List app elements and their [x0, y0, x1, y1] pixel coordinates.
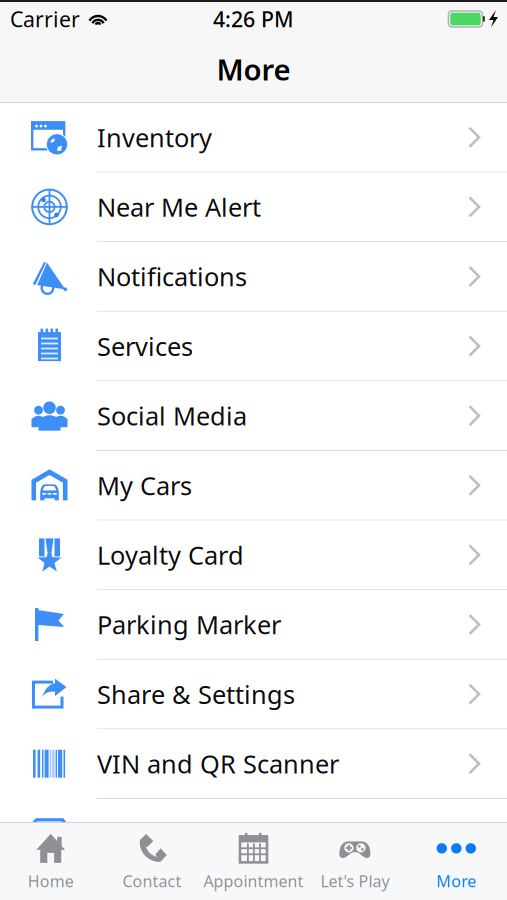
staticText: Services [97, 329, 193, 363]
button[interactable]: Notifications [0, 242, 507, 311]
staticText: Documents [97, 816, 233, 850]
staticText: Appointment [203, 870, 303, 892]
staticText: More [436, 870, 476, 892]
staticText: Home [28, 870, 74, 892]
staticText: More [216, 49, 290, 88]
button[interactable]: My Cars [0, 451, 507, 520]
button[interactable]: Inventory [0, 103, 507, 172]
staticText: Contact [123, 870, 182, 892]
staticText: My Cars [97, 468, 192, 502]
button[interactable]: Share & Settings [0, 660, 507, 728]
button[interactable]: Appointment [203, 823, 304, 900]
staticText: Let's Play [320, 870, 389, 892]
button[interactable]: Documents [0, 799, 507, 868]
staticText: Carrier [10, 5, 80, 33]
button[interactable]: Services [0, 312, 507, 380]
staticText: Notifications [97, 260, 247, 293]
button[interactable]: Near Me Alert [0, 173, 507, 241]
button[interactable]: Social Media [0, 381, 507, 450]
staticText: Share & Settings [97, 677, 295, 711]
staticText: 4:26 PM [213, 5, 294, 33]
button[interactable]: Parking Marker [0, 590, 507, 659]
staticText: Loyalty Card [97, 538, 244, 572]
button[interactable]: More [406, 823, 507, 900]
staticText: Near Me Alert [97, 190, 261, 224]
button[interactable]: Contact [101, 823, 203, 900]
button[interactable]: Loyalty Card [0, 521, 507, 589]
staticText: Inventory [97, 120, 212, 154]
staticText: Social Media [97, 399, 247, 432]
staticText: Parking Marker [97, 608, 281, 641]
staticText: VIN and QR Scanner [97, 747, 339, 780]
button[interactable]: Home [0, 823, 101, 900]
button[interactable]: Let's Play [304, 823, 406, 900]
button[interactable]: VIN and QR Scanner [0, 729, 507, 798]
